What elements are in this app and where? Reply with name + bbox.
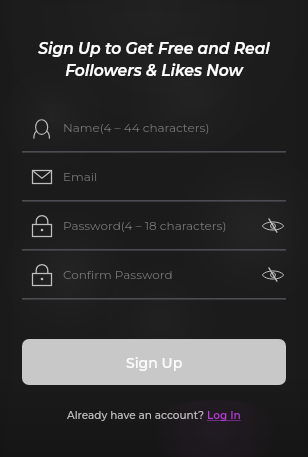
button[interactable]: Show password xyxy=(260,262,286,288)
button[interactable]: Log In xyxy=(207,409,241,422)
staticText: Sign Up to Get Free and Real Followers &… xyxy=(0,39,308,80)
staticText: Email xyxy=(63,169,260,184)
button[interactable]: Show password xyxy=(260,213,286,239)
staticText: Log In xyxy=(207,409,241,422)
button[interactable]: Confirm Password xyxy=(22,251,286,298)
button[interactable]: Sign Up xyxy=(22,339,286,385)
staticText: Sign Up xyxy=(126,354,183,371)
staticText: Confirm Password xyxy=(63,267,260,282)
button[interactable]: Name(4 – 44 characters) xyxy=(22,104,286,151)
staticText: Name(4 – 44 characters) xyxy=(63,120,260,135)
staticText: Already have an account? xyxy=(67,409,207,422)
button[interactable]: Email xyxy=(22,153,286,200)
button[interactable]: Password(4 – 18 characters) xyxy=(22,202,286,249)
staticText: Password(4 – 18 characters) xyxy=(63,218,260,233)
